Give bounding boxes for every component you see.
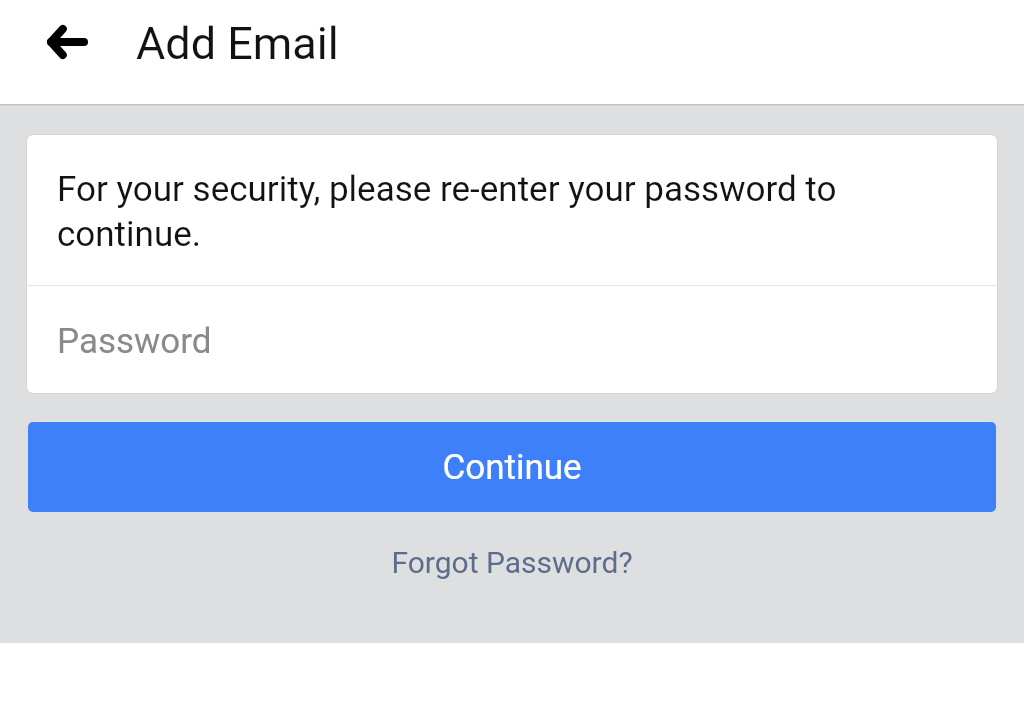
button[interactable]: Continue [28,422,996,512]
button[interactable]: Back [0,0,134,104]
staticText: Password [57,321,212,362]
staticText: Forgot Password? [391,545,633,580]
staticText: Add Email [136,17,339,70]
button[interactable]: Forgot Password? [379,537,645,588]
staticText: Continue [442,447,582,488]
staticText: For your security, please re-enter your … [57,169,971,254]
button[interactable]: Password [27,286,997,393]
